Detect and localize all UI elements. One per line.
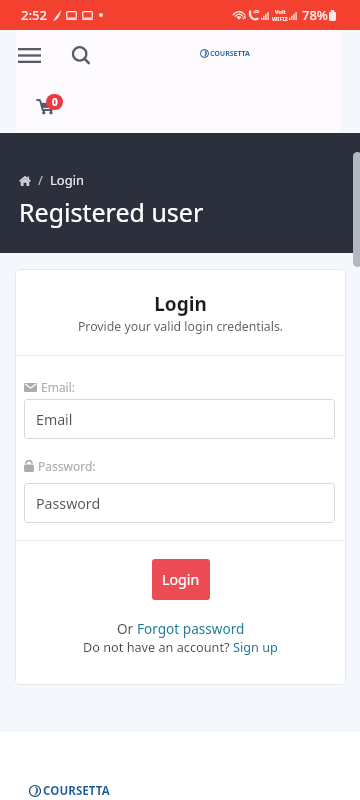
staticText: COURSETTA bbox=[210, 48, 250, 58]
button[interactable]: Open menu bbox=[7, 33, 52, 77]
staticText: Provide your valid login credentials. bbox=[15, 318, 346, 335]
staticText: Sign up bbox=[233, 638, 278, 655]
staticText: Volt bbox=[275, 8, 286, 15]
staticText: Login bbox=[50, 171, 85, 189]
staticText: Password bbox=[36, 494, 101, 513]
button[interactable]: Forgot password bbox=[137, 619, 245, 638]
staticText: Forgot password bbox=[137, 619, 245, 638]
staticText: Login bbox=[15, 291, 346, 317]
staticText: 0 bbox=[52, 95, 58, 109]
button[interactable]: COURSETTA bbox=[200, 48, 250, 58]
button[interactable]: Login bbox=[152, 559, 210, 600]
staticText: Or bbox=[117, 619, 137, 638]
staticText: Do not have an account? bbox=[83, 638, 233, 655]
staticText: Password: bbox=[38, 458, 96, 474]
button[interactable]: Email bbox=[24, 399, 335, 439]
button[interactable]: Shopping cart, 0 items bbox=[26, 88, 70, 124]
staticText: / bbox=[38, 171, 43, 189]
staticText: Registered user bbox=[19, 195, 204, 229]
button[interactable]: COURSETTA bbox=[29, 783, 110, 799]
staticText: 78% bbox=[302, 6, 328, 24]
button[interactable]: Sign up bbox=[233, 638, 278, 655]
button[interactable]: Search bbox=[58, 33, 103, 77]
button[interactable]: Password bbox=[24, 483, 335, 523]
staticText: Email: bbox=[41, 379, 76, 395]
staticText: COURSETTA bbox=[43, 783, 110, 799]
staticText: 2:52 bbox=[21, 6, 47, 24]
staticText: Login bbox=[162, 570, 200, 589]
staticText: Email bbox=[36, 410, 73, 429]
staticText: WIFI2 bbox=[272, 15, 288, 22]
